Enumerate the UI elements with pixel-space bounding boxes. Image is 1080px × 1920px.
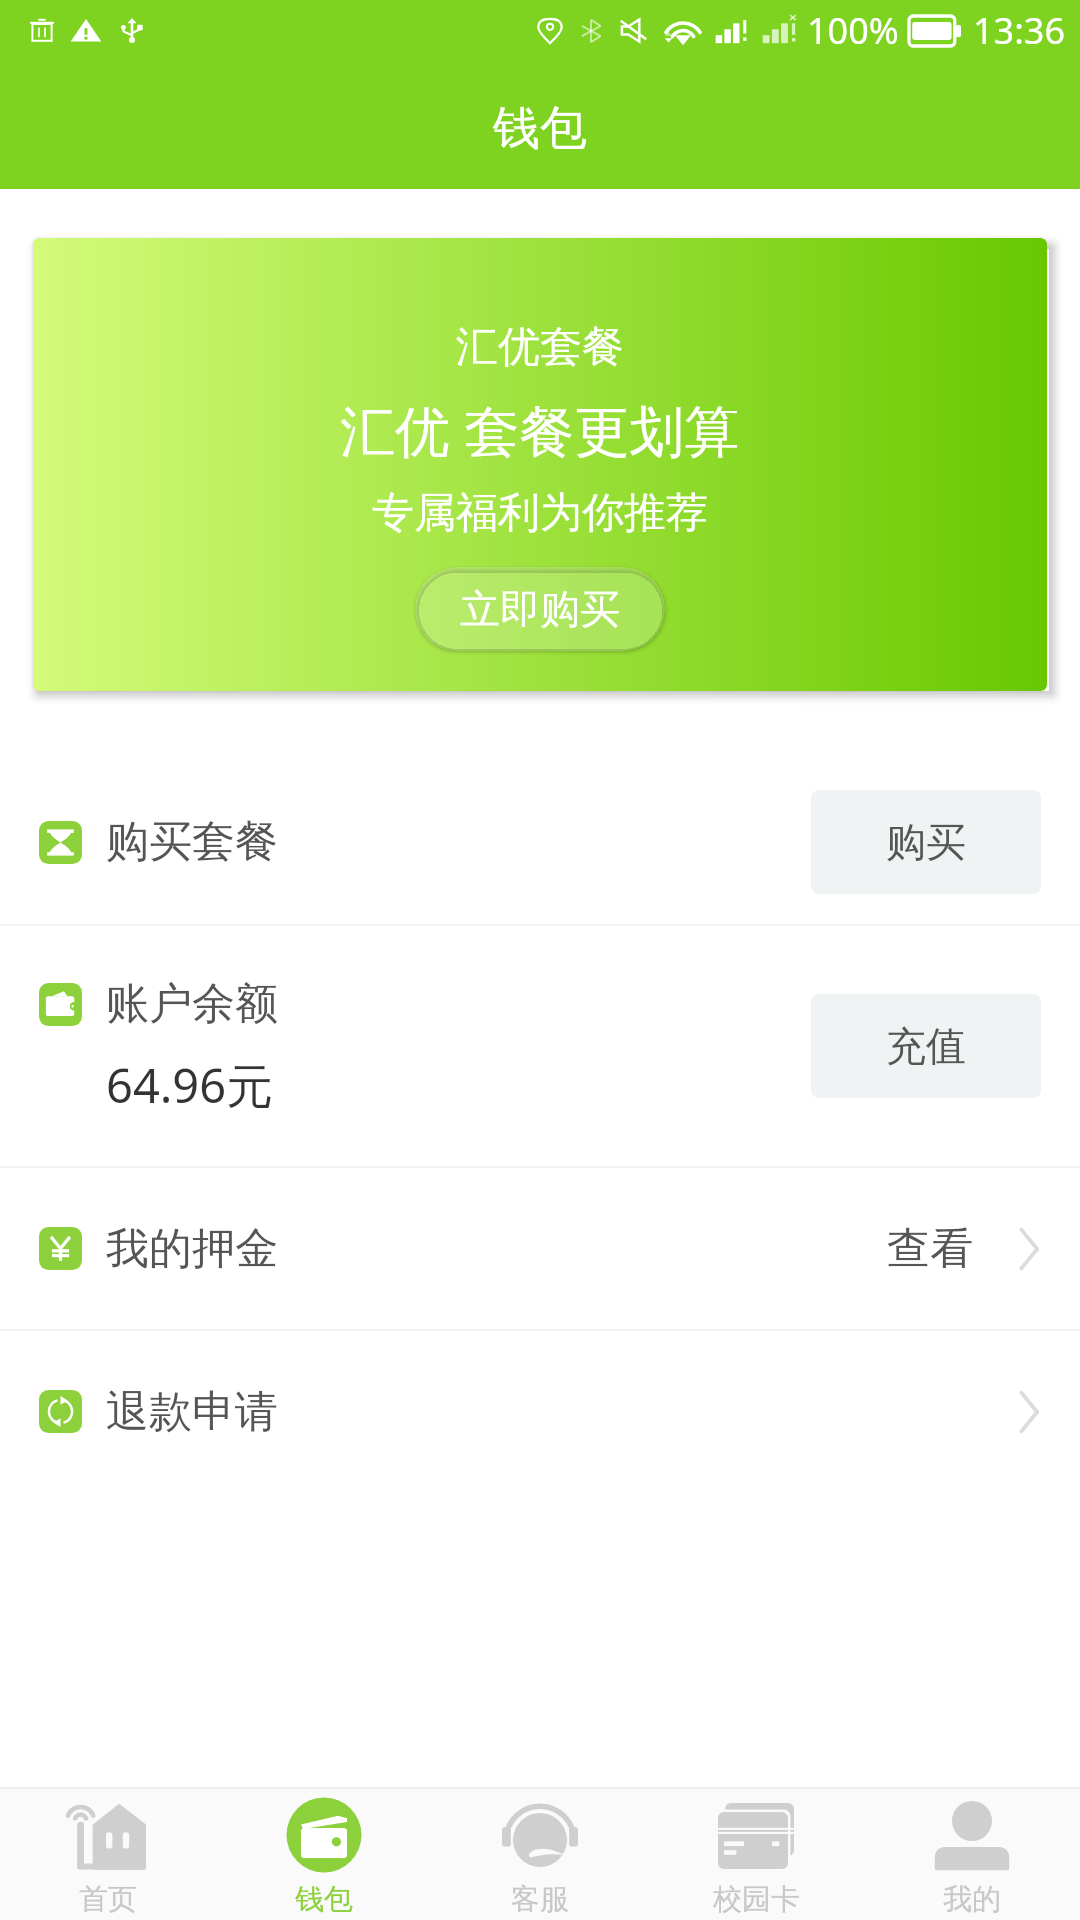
staticText: 64.96元	[106, 1053, 274, 1117]
staticText: 专属福利为你推荐	[372, 487, 708, 540]
button[interactable]: 购买	[811, 790, 1041, 894]
staticText: 查看	[887, 1222, 973, 1276]
staticText: 我的押金	[106, 1222, 278, 1276]
staticText: 13:36	[973, 6, 1066, 55]
button[interactable]: 钱包	[216, 1789, 432, 1920]
button[interactable]: 客服	[432, 1789, 648, 1920]
staticText: 立即购买	[460, 584, 620, 634]
button[interactable]: 退款申请	[0, 1331, 1080, 1492]
button[interactable]: 汇优套餐 promotion banner	[33, 238, 1047, 691]
button[interactable]: 充值	[811, 994, 1041, 1098]
staticText: 钱包	[493, 99, 587, 158]
button[interactable]: 校园卡	[648, 1789, 864, 1920]
button[interactable]: 立即购买	[415, 567, 665, 651]
staticText: 客服	[511, 1881, 569, 1918]
staticText: 校园卡	[713, 1881, 800, 1918]
staticText: 账户余额	[106, 977, 278, 1031]
staticText: 退款申请	[106, 1385, 278, 1439]
button[interactable]: 我的押金	[0, 1168, 1080, 1329]
staticText: 购买	[886, 817, 966, 867]
button[interactable]: 购买套餐	[0, 760, 1080, 924]
staticText: 首页	[79, 1881, 137, 1918]
staticText: 100%	[807, 6, 899, 55]
button[interactable]: 首页	[0, 1789, 216, 1920]
staticText: 我的	[943, 1881, 1001, 1918]
staticText: 汇优 套餐更划算	[340, 392, 740, 467]
staticText: 购买套餐	[106, 815, 278, 869]
button[interactable]: 账户余额	[0, 926, 1080, 1166]
button[interactable]: 我的	[864, 1789, 1080, 1920]
staticText: 充值	[886, 1021, 966, 1071]
staticText: 钱包	[295, 1881, 353, 1918]
staticText: 汇优套餐	[456, 321, 624, 374]
